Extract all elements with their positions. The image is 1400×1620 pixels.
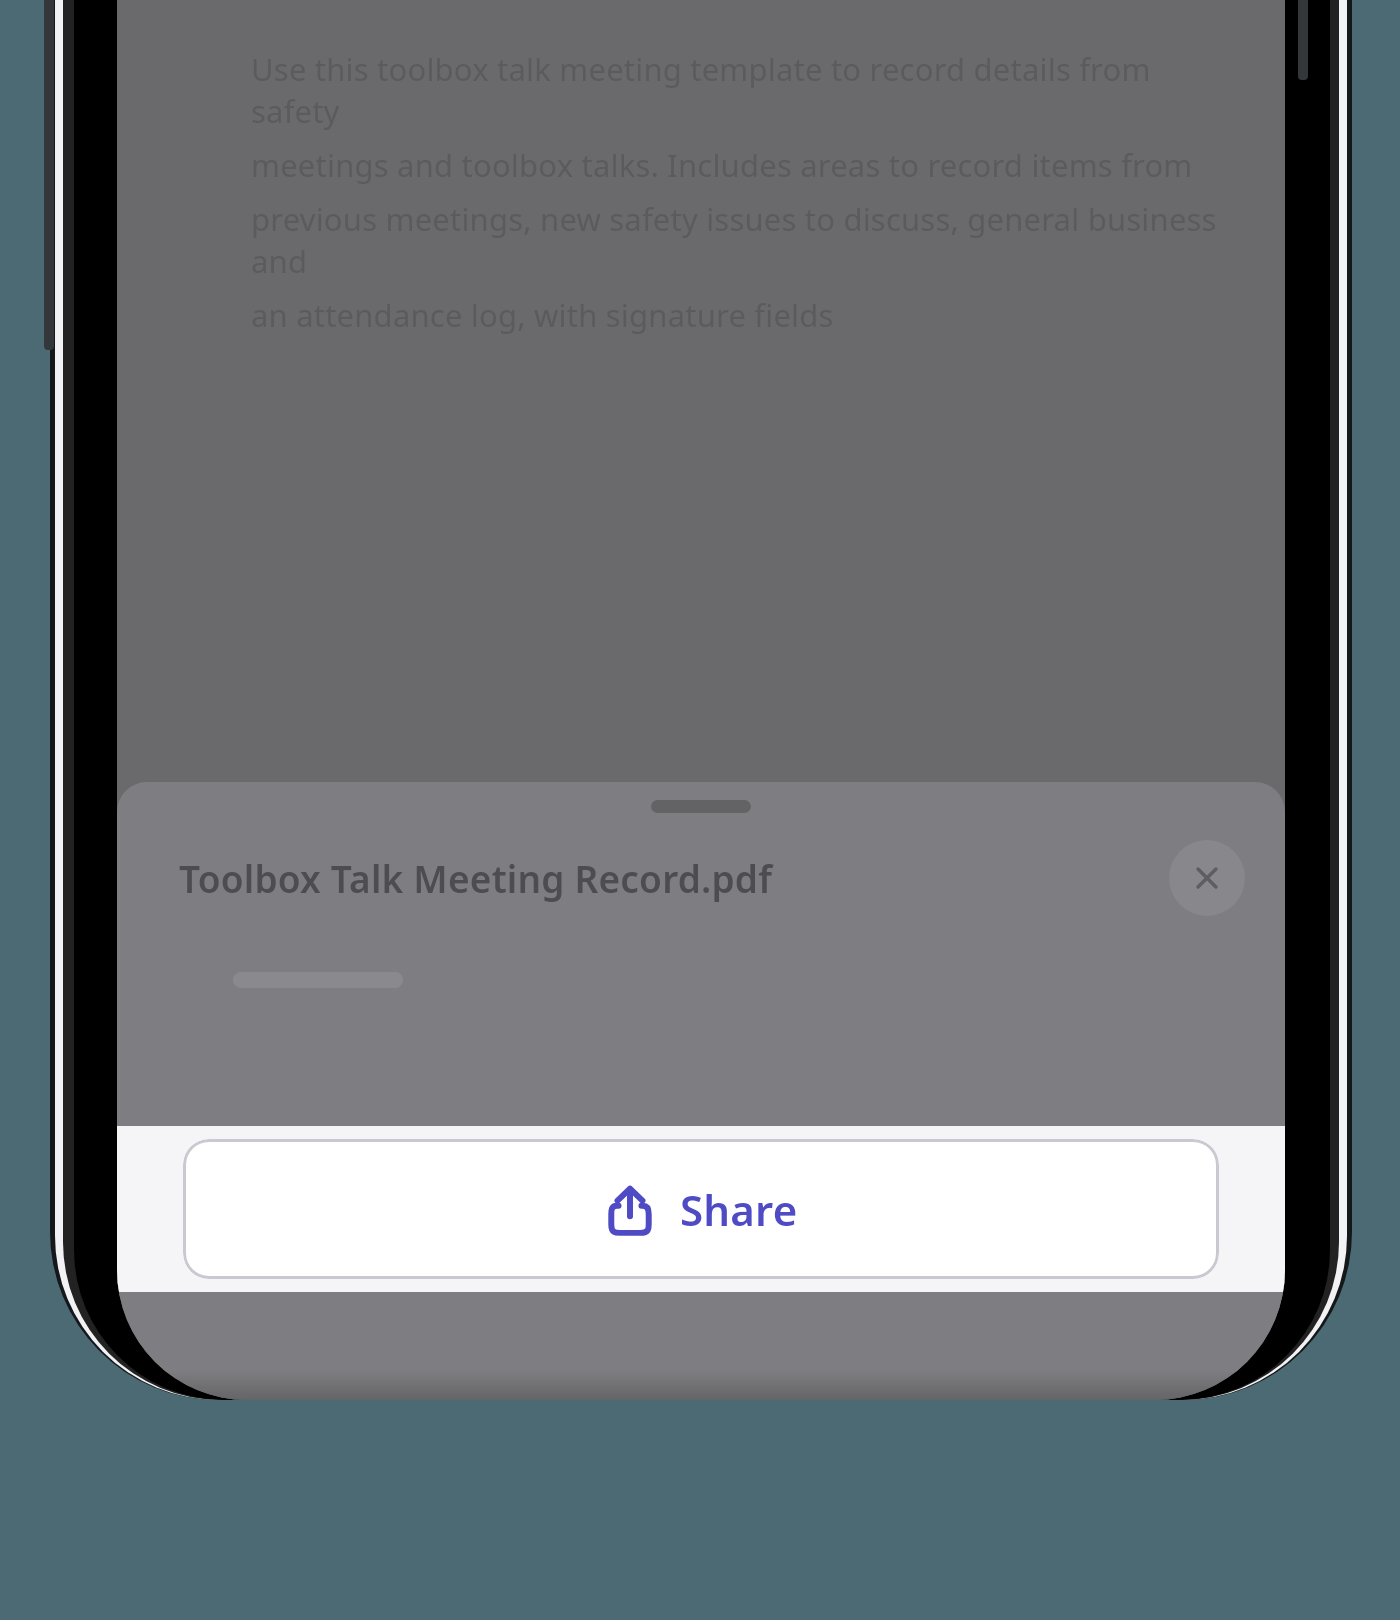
staticText: Toolbox Talk Meeting Record.pdf	[179, 853, 773, 903]
staticText: previous meetings, new safety issues to …	[251, 198, 1225, 282]
other: Share	[604, 1184, 656, 1236]
staticText: meetings and toolbox talks. Includes are…	[251, 144, 1193, 186]
staticText: an attendance log, with signature fields	[251, 294, 834, 336]
staticText: Use this toolbox talk meeting template t…	[251, 48, 1225, 132]
button[interactable]: Close	[1169, 840, 1245, 916]
staticText: Share	[680, 1181, 798, 1238]
button[interactable]: Share	[183, 1139, 1219, 1279]
